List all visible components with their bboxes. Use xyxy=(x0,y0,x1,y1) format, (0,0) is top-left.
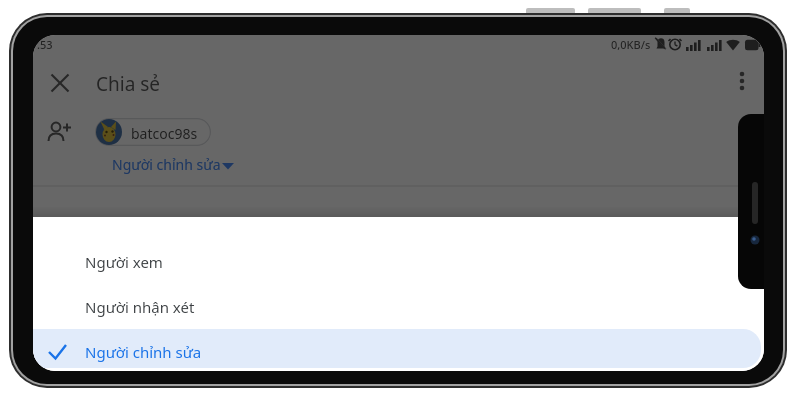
staticText: batcoc98s xyxy=(131,124,198,143)
staticText: 0,0KB/s xyxy=(611,37,651,52)
button[interactable]: Người xem xyxy=(33,239,764,284)
button[interactable]: Người chỉnh sửa xyxy=(112,155,242,179)
button[interactable] xyxy=(51,74,69,92)
button[interactable]: Người nhận xét xyxy=(33,284,764,329)
staticText: Người chỉnh sửa xyxy=(112,155,221,174)
button[interactable]: batcoc98s xyxy=(95,118,211,146)
button[interactable] xyxy=(47,120,71,144)
staticText: Người nhận xét xyxy=(85,297,195,317)
button[interactable]: Người chỉnh sửa xyxy=(33,329,761,368)
button[interactable] xyxy=(735,71,749,91)
staticText: .53 xyxy=(37,37,53,52)
staticText: Người xem xyxy=(85,252,163,272)
staticText: Chia sẻ xyxy=(96,71,161,97)
staticText: Người chỉnh sửa xyxy=(85,342,202,362)
